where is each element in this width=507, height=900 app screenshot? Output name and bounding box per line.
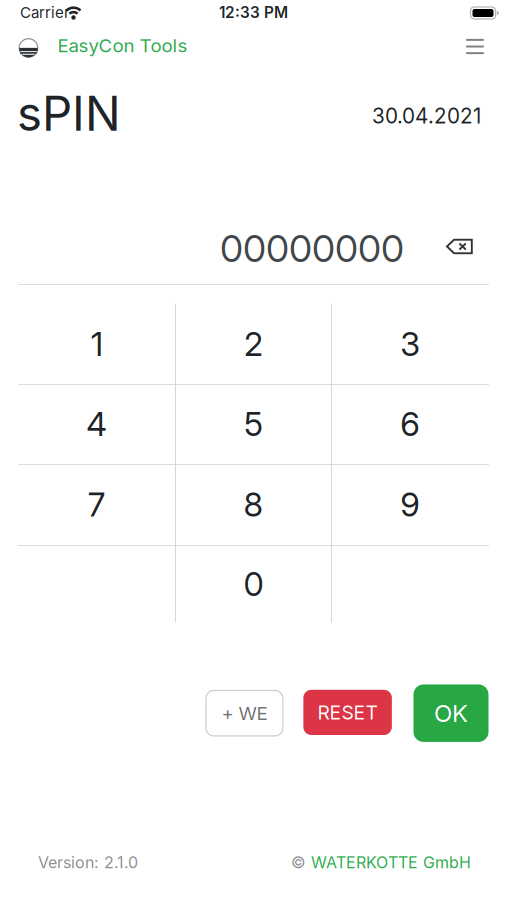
button[interactable]: Menu bbox=[458, 30, 492, 62]
button[interactable]: OK bbox=[413, 684, 488, 742]
staticText: 0 bbox=[243, 564, 263, 604]
staticText: 1 bbox=[91, 324, 103, 364]
button[interactable]: 4 bbox=[19, 384, 174, 463]
staticText: 9 bbox=[400, 485, 420, 524]
staticText: Version: 2.1.0 bbox=[38, 853, 138, 872]
button[interactable]: 3 bbox=[333, 304, 488, 383]
button[interactable]: + WE bbox=[206, 690, 283, 736]
staticText: + WE bbox=[221, 702, 267, 724]
button[interactable]: 6 bbox=[333, 384, 488, 463]
staticText: 8 bbox=[243, 485, 263, 524]
staticText: 4 bbox=[86, 404, 107, 444]
staticText: 30.04.2021 bbox=[372, 103, 481, 128]
staticText: 3 bbox=[400, 324, 420, 364]
staticText: OK bbox=[434, 699, 468, 728]
button[interactable]: 9 bbox=[333, 465, 488, 544]
staticText: 2 bbox=[244, 324, 263, 364]
button[interactable]: 2 bbox=[176, 304, 331, 383]
staticText: 12:33 PM bbox=[219, 3, 288, 22]
staticText: 00000000 bbox=[220, 226, 404, 271]
staticText: © bbox=[291, 853, 306, 872]
button[interactable]: 1 bbox=[19, 304, 174, 383]
button[interactable]: Delete bbox=[439, 231, 479, 261]
button[interactable]: 7 bbox=[19, 465, 174, 544]
button[interactable]: 0 bbox=[176, 544, 331, 623]
staticText: RESET bbox=[318, 701, 378, 724]
staticText: 5 bbox=[244, 404, 263, 444]
staticText: WATERKOTTE GmbH bbox=[311, 853, 471, 872]
staticText: 7 bbox=[88, 485, 106, 524]
button[interactable]: 8 bbox=[176, 465, 331, 544]
staticText: sPIN bbox=[17, 85, 121, 142]
staticText: 6 bbox=[400, 404, 420, 444]
button[interactable]: 5 bbox=[176, 384, 331, 463]
button[interactable]: RESET bbox=[303, 690, 392, 735]
staticText: EasyCon Tools bbox=[57, 34, 187, 57]
button[interactable]: 30.04.2021 bbox=[0, 101, 507, 131]
staticText: Carrier bbox=[20, 3, 70, 22]
